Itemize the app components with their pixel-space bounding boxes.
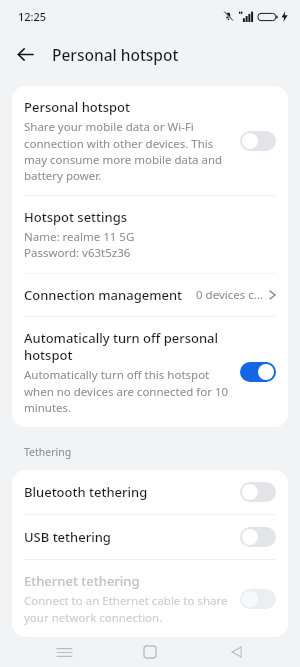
button[interactable]: Back <box>8 37 42 71</box>
staticText: Share your mobile data or Wi-Fi connecti… <box>24 119 230 183</box>
button[interactable]: On <box>240 362 276 382</box>
staticText: Password: v63t5z36 <box>24 245 131 261</box>
button[interactable]: Personal hotspot <box>12 86 288 195</box>
staticText: 0 devices c… <box>196 287 263 303</box>
staticText: Personal hotspot <box>24 98 131 116</box>
staticText: Hotspot settings <box>24 208 128 226</box>
staticText: Tethering <box>24 445 72 459</box>
staticText: Connection management <box>24 286 183 304</box>
staticText: Personal hotspot <box>52 44 179 65</box>
button[interactable]: USB tethering <box>12 515 288 559</box>
button[interactable]: Ethernet tethering <box>12 560 288 637</box>
staticText: Connect to an Ethernet cable to share yo… <box>24 593 230 625</box>
staticText: Automatically turn off personal hotspot <box>24 329 230 364</box>
button[interactable]: Off <box>240 482 276 502</box>
staticText: Ethernet tethering <box>24 572 140 590</box>
button[interactable]: Hotspot settings <box>12 196 288 273</box>
button[interactable]: Automatically turn off personal hotspot <box>12 317 288 427</box>
button[interactable]: Off <box>240 527 276 547</box>
button[interactable]: Off <box>240 589 276 609</box>
staticText: Automatically turn off this hotspot when… <box>24 367 230 415</box>
button[interactable]: Recents <box>42 637 86 667</box>
button[interactable]: Off <box>240 131 276 151</box>
button[interactable]: Connection management <box>12 274 288 316</box>
staticText: Name: realme 11 5G <box>24 229 135 245</box>
staticText: USB tethering <box>24 528 111 546</box>
button[interactable]: Bluetooth tethering <box>12 470 288 514</box>
button[interactable]: Home <box>128 637 172 667</box>
staticText: Bluetooth tethering <box>24 483 148 501</box>
staticText: 12:25 <box>18 9 47 24</box>
button[interactable]: Back <box>214 637 258 667</box>
